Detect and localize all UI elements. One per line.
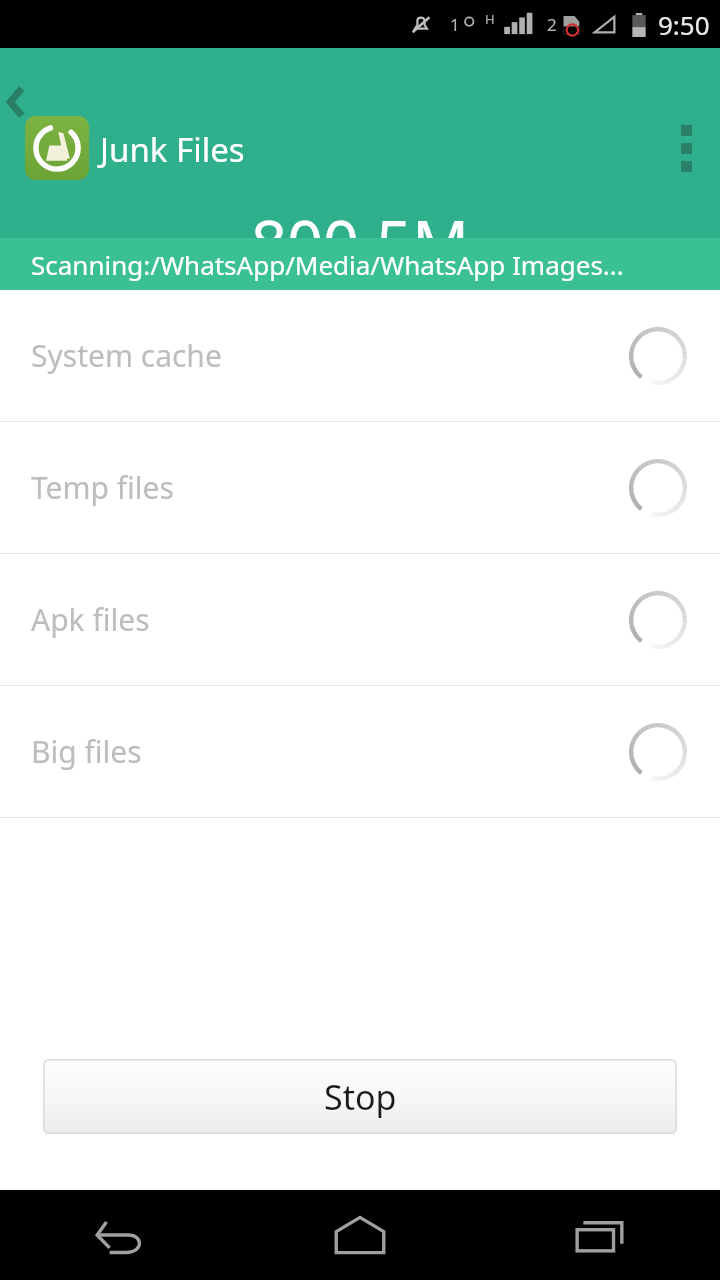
staticText: Apk files	[31, 599, 150, 640]
button[interactable]: Back	[0, 1190, 240, 1280]
button[interactable]: Back	[0, 72, 38, 132]
staticText: Junk Files	[100, 127, 245, 172]
button[interactable]: More options	[652, 108, 720, 188]
staticText: 800.5M	[251, 200, 470, 286]
button[interactable]: Apk files	[0, 554, 720, 685]
button[interactable]: Stop	[43, 1059, 677, 1134]
staticText: Temp files	[31, 467, 174, 508]
staticText: Big files	[31, 731, 142, 772]
button[interactable]: Temp files	[0, 422, 720, 553]
staticText: Stop	[324, 1074, 397, 1120]
staticText: 9:50	[658, 7, 710, 42]
staticText: Scanning:/WhatsApp/Media/WhatsApp Images…	[31, 247, 624, 282]
button[interactable]: Big files	[0, 686, 720, 817]
staticText: 1	[450, 13, 460, 36]
button[interactable]: System cache	[0, 290, 720, 421]
staticText: 2	[547, 13, 557, 36]
staticText: System cache	[31, 335, 222, 376]
button[interactable]: Home	[240, 1190, 480, 1280]
staticText: H	[485, 10, 495, 28]
button[interactable]: Recent apps	[480, 1190, 720, 1280]
